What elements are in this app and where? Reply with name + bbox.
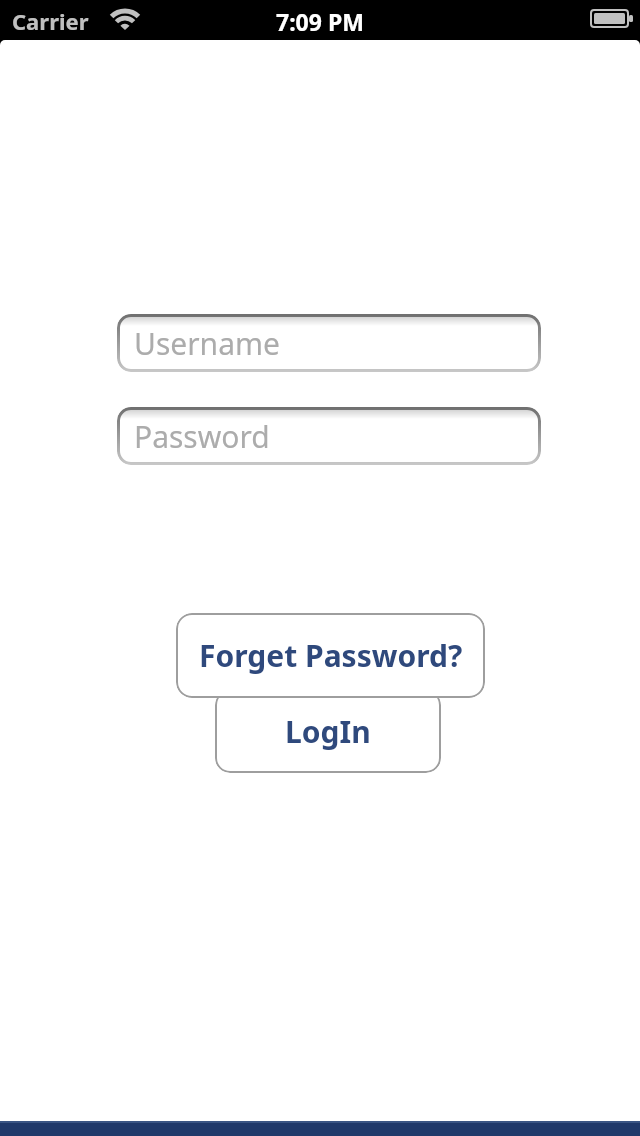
button[interactable]: Username xyxy=(117,314,541,372)
staticText: Forget Password? xyxy=(199,635,463,676)
button[interactable]: Password xyxy=(117,407,541,465)
staticText: Carrier xyxy=(12,6,89,36)
staticText: Username xyxy=(134,323,280,364)
staticText: Password xyxy=(134,416,270,457)
button[interactable]: LogIn xyxy=(215,690,441,773)
staticText: LogIn xyxy=(285,711,371,752)
staticText: 7:09 PM xyxy=(276,6,364,37)
button[interactable]: Forget Password? xyxy=(176,613,485,698)
